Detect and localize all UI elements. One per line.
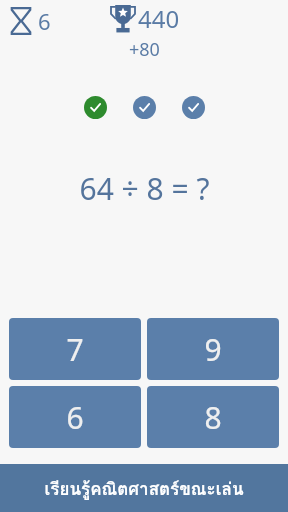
staticText: เรียนรู้คณิตศาสตร์ขณะเล่น <box>44 475 244 502</box>
staticText: 6 <box>66 397 84 438</box>
button[interactable]: 6 <box>9 386 141 448</box>
button[interactable]: 7 <box>9 318 141 380</box>
button[interactable]: 9 <box>147 318 279 380</box>
staticText: 8 <box>204 397 222 438</box>
staticText: 7 <box>66 329 84 370</box>
button[interactable]: เรียนรู้คณิตศาสตร์ขณะเล่น <box>0 464 288 512</box>
staticText: +80 <box>129 37 160 62</box>
staticText: 9 <box>204 329 222 370</box>
other: Lives remaining <box>10 7 32 35</box>
staticText: 6 <box>38 6 51 36</box>
staticText: 64 ÷ 8 = ? <box>79 168 210 209</box>
staticText: 440 <box>138 2 180 35</box>
other: Score <box>108 3 138 35</box>
button[interactable]: 8 <box>147 386 279 448</box>
